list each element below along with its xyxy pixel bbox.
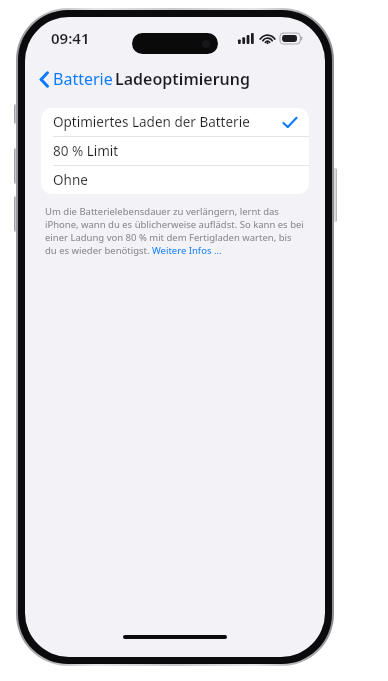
staticText: Ohne bbox=[53, 171, 88, 189]
button[interactable]: Optimiertes Laden der Batterie bbox=[41, 108, 309, 136]
staticText: Optimiertes Laden der Batterie bbox=[53, 113, 250, 131]
button[interactable]: Ohne bbox=[41, 166, 309, 194]
staticText: Um die Batterielebensdauer zu verlängern… bbox=[45, 205, 305, 257]
staticText: 09:41 bbox=[51, 28, 90, 48]
button[interactable]: 80 % Limit bbox=[41, 137, 309, 165]
staticText: 80 % Limit bbox=[53, 142, 119, 160]
staticText: Ladeoptimierung bbox=[115, 68, 251, 90]
staticText: Batterie bbox=[53, 68, 113, 90]
button[interactable]: Batterie bbox=[34, 64, 118, 94]
